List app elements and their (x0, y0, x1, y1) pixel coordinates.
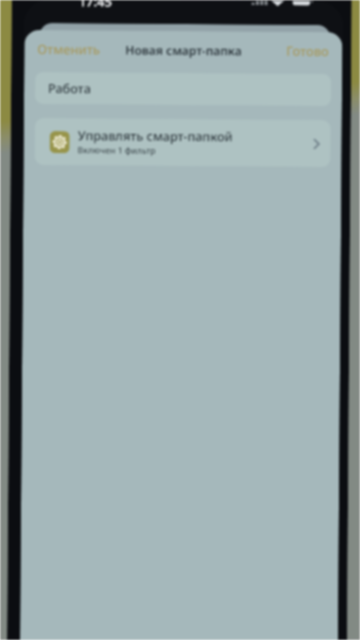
staticText: Работа (48, 80, 91, 97)
button[interactable]: Отменить (29, 35, 108, 62)
button[interactable]: Готово (278, 37, 337, 64)
staticText: Отменить (37, 40, 100, 57)
staticText: Новая смарт-папка (125, 42, 242, 58)
staticText: Управлять смарт-папкой (78, 127, 233, 145)
button[interactable]: Работа (35, 72, 331, 106)
staticText: Готово (286, 42, 329, 59)
button[interactable]: Управлять смарт-папкой (34, 118, 331, 167)
staticText: 17:45 (79, 0, 113, 10)
staticText: Включен 1 фильтр (78, 144, 157, 157)
